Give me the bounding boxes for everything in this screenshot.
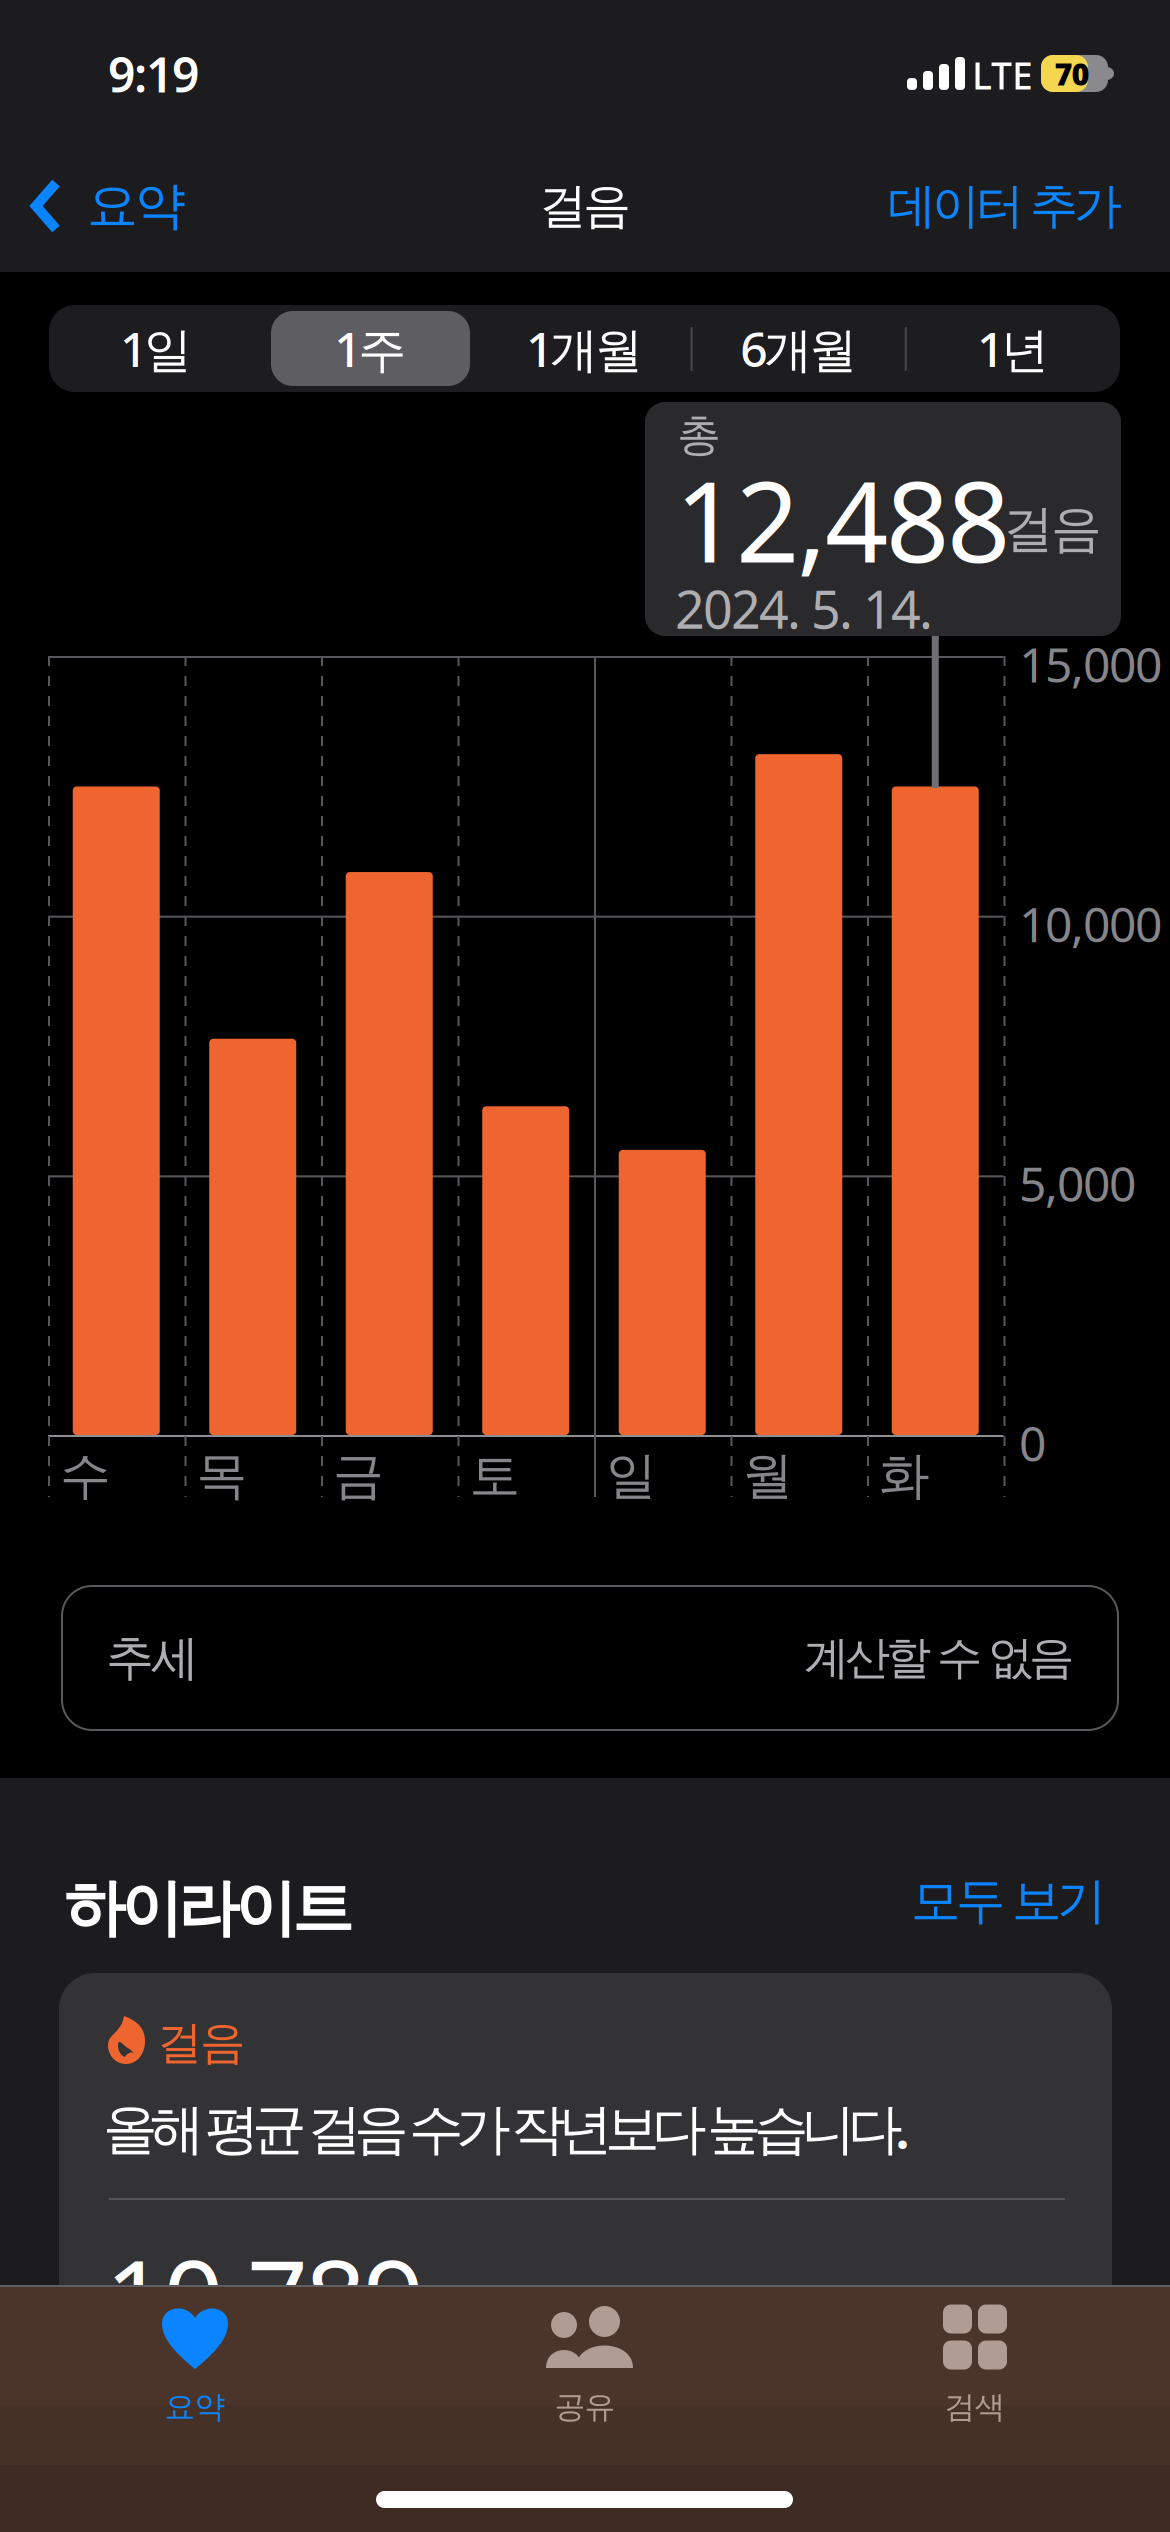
staticText: 검색 xyxy=(944,2388,1005,2426)
button[interactable]: 1일 xyxy=(49,305,263,392)
staticText: 공유 xyxy=(554,2388,615,2426)
button[interactable]: 추세 xyxy=(62,1586,1118,1730)
staticText: 1개월 xyxy=(526,317,643,380)
button[interactable]: 공유 xyxy=(390,2285,780,2532)
staticText: 토 xyxy=(469,1445,520,1507)
staticText: 걸음 xyxy=(157,2015,245,2071)
staticText: 화 xyxy=(879,1445,930,1507)
staticText: 일 xyxy=(606,1445,657,1507)
staticText: 10,000 xyxy=(1019,892,1162,955)
staticText: LTE xyxy=(972,50,1033,100)
staticText: 15,000 xyxy=(1019,632,1162,696)
staticText: 걸음/일 xyxy=(409,2273,577,2344)
staticText: 5,000 xyxy=(1019,1151,1136,1215)
staticText: 12,488 xyxy=(675,446,1010,593)
button[interactable]: 요약 xyxy=(0,140,260,272)
staticText: 70 xyxy=(1054,53,1089,94)
button[interactable]: 1개월 xyxy=(477,305,692,392)
button[interactable]: 데이터 추가 xyxy=(832,140,1170,272)
staticText: 추세 xyxy=(106,1628,199,1687)
button[interactable]: 모두 보기 xyxy=(874,1866,1106,1936)
button[interactable]: 요약 xyxy=(0,2285,390,2532)
staticText: 6개월 xyxy=(740,317,857,380)
staticText: 걸음 xyxy=(1003,498,1102,560)
staticText: 1주 xyxy=(334,317,406,380)
staticText: 1일 xyxy=(120,317,192,380)
button[interactable]: 1년 xyxy=(906,305,1120,392)
staticText: 1년 xyxy=(977,317,1049,380)
button[interactable]: 6개월 xyxy=(692,305,906,392)
staticText: 모두 보기 xyxy=(911,1871,1106,1931)
staticText: 월 xyxy=(742,1445,793,1507)
staticText: 수 xyxy=(60,1445,111,1507)
staticText: 올해 평균 걸음 수가 작년보다 높습니다. xyxy=(103,2091,910,2164)
staticText: 10,789 xyxy=(105,2225,424,2367)
staticText: 계산할 수 없음 xyxy=(804,1630,1074,1686)
button[interactable]: 검색 xyxy=(780,2285,1170,2532)
staticText: 2024. 5. 14. xyxy=(675,574,933,643)
button[interactable]: 걸음 xyxy=(59,1973,1112,2333)
staticText: 금 xyxy=(333,1445,384,1507)
staticText: 목 xyxy=(196,1445,247,1507)
staticText: 요약 xyxy=(87,175,186,237)
staticText: 요약 xyxy=(164,2388,225,2426)
staticText: 걸음 xyxy=(539,176,631,235)
staticText: 9:19 xyxy=(108,42,199,106)
staticText: 0 xyxy=(1019,1411,1046,1475)
staticText: 데이터 추가 xyxy=(888,176,1122,235)
staticText: 하이라이트 xyxy=(64,1871,353,1946)
staticText: 총 xyxy=(677,408,721,462)
button[interactable]: 1주 xyxy=(263,305,477,392)
